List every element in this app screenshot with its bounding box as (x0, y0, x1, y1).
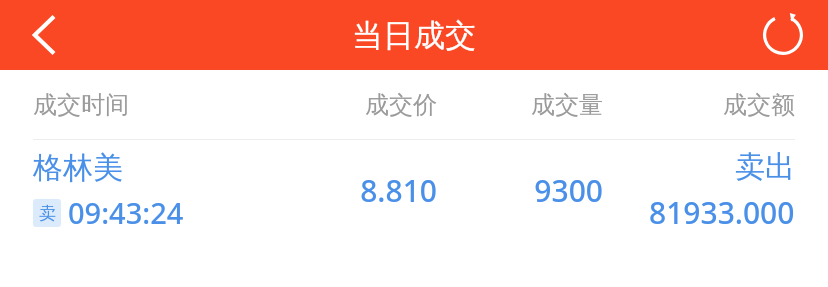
button[interactable]: 格林美 (0, 140, 828, 240)
staticText: 成交价 (235, 90, 437, 120)
staticText: 09:43:24 (68, 193, 184, 232)
staticText: 8.810 (235, 170, 437, 211)
staticText: 成交时间 (33, 90, 235, 120)
staticText: 卖 (39, 203, 56, 224)
staticText: 格林美 (33, 149, 123, 187)
staticText: 成交额 (603, 90, 795, 120)
button[interactable]: Back (0, 0, 90, 70)
staticText: 9300 (437, 170, 603, 211)
staticText: 81933.000 (649, 192, 795, 233)
staticText: 卖出 (735, 148, 795, 186)
staticText: 当日成交 (352, 16, 476, 55)
button[interactable]: Refresh (738, 0, 828, 70)
staticText: 成交量 (437, 90, 603, 120)
